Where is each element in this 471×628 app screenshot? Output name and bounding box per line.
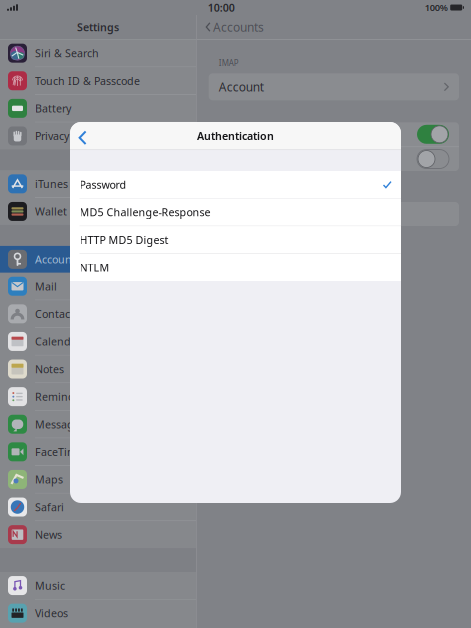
- staticText: News: [35, 528, 62, 542]
- button[interactable]: NTLM: [70, 254, 401, 281]
- staticText: Accounts & Passwords: [35, 252, 147, 266]
- staticText: Messages: [35, 417, 85, 431]
- staticText: Safari: [35, 500, 64, 514]
- staticText: Privacy: [35, 129, 69, 143]
- button[interactable]: iTunes & App Store: [0, 170, 196, 197]
- button[interactable]: FaceTime: [0, 438, 196, 465]
- staticText: Authentication: [197, 129, 274, 143]
- staticText: Calendar: [35, 334, 81, 349]
- staticText: Touch ID & Passcode: [35, 74, 140, 88]
- staticText: Battery: [35, 101, 71, 115]
- staticText: 10:00: [208, 0, 235, 15]
- button[interactable]: HTTP MD5 Digest: [70, 226, 401, 253]
- staticText: NTLM: [79, 260, 109, 274]
- staticText: HTTP MD5 Digest: [79, 233, 168, 247]
- button[interactable]: Back: [70, 123, 96, 148]
- button[interactable]: Mail: [0, 273, 196, 300]
- staticText: Contacts: [35, 307, 79, 321]
- button[interactable]: Accounts: [197, 15, 471, 39]
- button[interactable]: Notes: [0, 356, 196, 382]
- button[interactable]: Safari: [0, 494, 196, 520]
- staticText: iTunes & App Store: [35, 177, 132, 191]
- staticText: FaceTime: [35, 445, 83, 459]
- staticText: Accounts: [213, 19, 264, 35]
- staticText: Password: [79, 177, 126, 192]
- button[interactable]: Wallet & Apple Pay: [0, 198, 196, 225]
- button[interactable]: Music: [0, 572, 196, 599]
- staticText: Mail: [35, 279, 57, 293]
- staticText: Maps: [35, 472, 63, 487]
- button[interactable]: Siri & Search: [0, 40, 196, 67]
- button[interactable]: Touch ID & Passcode: [0, 67, 196, 94]
- staticText: Account: [219, 79, 264, 95]
- staticText: Reminders: [35, 390, 90, 404]
- staticText: Siri & Search: [35, 46, 99, 60]
- button[interactable]: Battery: [0, 95, 196, 122]
- staticText: MD5 Challenge-Response: [79, 205, 210, 219]
- button[interactable]: Messages: [0, 411, 196, 438]
- staticText: Wallet & Apple Pay: [35, 204, 131, 219]
- button[interactable]: Contacts: [0, 300, 196, 327]
- button[interactable]: Videos: [0, 600, 196, 627]
- button[interactable]: Password: [70, 171, 401, 198]
- staticText: 100%: [425, 1, 448, 14]
- staticText: Settings: [77, 20, 119, 34]
- button[interactable]: Calendar: [0, 328, 196, 355]
- button[interactable]: News: [0, 521, 196, 548]
- staticText: Videos: [35, 606, 68, 620]
- button[interactable]: Account: [209, 73, 459, 100]
- button[interactable]: Accounts & Passwords: [0, 246, 196, 273]
- staticText: IMAP: [219, 58, 239, 68]
- staticText: Notes: [35, 362, 64, 376]
- button[interactable]: Maps: [0, 466, 196, 493]
- button[interactable]: MD5 Challenge-Response: [70, 199, 401, 226]
- button[interactable]: Privacy: [0, 122, 196, 149]
- button[interactable]: Reminders: [0, 383, 196, 410]
- staticText: Music: [35, 578, 65, 593]
